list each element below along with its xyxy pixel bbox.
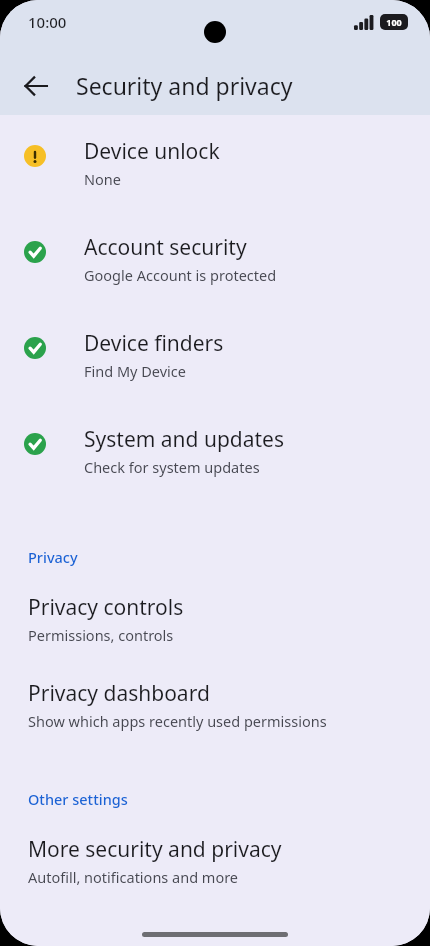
staticText: Google Account is protected — [84, 265, 277, 285]
staticText: Permissions, controls — [28, 625, 174, 645]
button[interactable]: Privacy controls — [0, 589, 430, 649]
staticText: Privacy — [28, 547, 78, 567]
button[interactable]: Account security — [0, 223, 430, 295]
staticText: Device finders — [84, 329, 224, 358]
staticText: Privacy dashboard — [28, 679, 210, 708]
button[interactable]: Device finders — [0, 319, 430, 391]
staticText: Privacy controls — [28, 593, 184, 622]
staticText: More security and privacy — [28, 835, 282, 864]
button[interactable]: Privacy dashboard — [0, 675, 430, 735]
button[interactable]: System and updates — [0, 415, 430, 487]
staticText: Show which apps recently used permission… — [28, 711, 327, 731]
staticText: Other settings — [28, 789, 128, 809]
button[interactable]: Device unlock — [0, 127, 430, 199]
staticText: None — [84, 169, 121, 189]
staticText: Find My Device — [84, 361, 186, 381]
staticText: System and updates — [84, 425, 285, 454]
staticText: Security and privacy — [76, 70, 293, 101]
staticText: Autofill, notifications and more — [28, 867, 239, 887]
button[interactable]: More security and privacy — [0, 831, 430, 891]
staticText: Special features — [28, 943, 138, 946]
staticText: Check for system updates — [84, 457, 260, 477]
staticText: Account security — [84, 233, 247, 262]
staticText: 10:00 — [28, 12, 67, 32]
staticText: 100 — [386, 16, 402, 28]
staticText: Device unlock — [84, 137, 220, 166]
button[interactable]: Back — [12, 62, 60, 110]
